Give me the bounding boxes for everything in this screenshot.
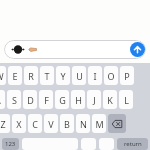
button[interactable]	[4, 40, 146, 59]
button[interactable]: O	[104, 66, 118, 85]
staticText: F	[44, 94, 49, 106]
staticText: U	[76, 70, 83, 82]
button[interactable]: Z	[0, 114, 10, 133]
button[interactable]: B	[60, 114, 74, 133]
staticText: N	[80, 118, 87, 130]
staticText: D	[27, 94, 34, 106]
staticText: K	[107, 94, 113, 106]
button[interactable]: F	[39, 90, 53, 109]
button[interactable]: M	[92, 114, 106, 133]
button[interactable]: S	[7, 90, 21, 109]
staticText: W	[0, 70, 4, 82]
staticText: G	[59, 94, 66, 106]
staticText: C	[32, 118, 38, 130]
button[interactable]: A	[0, 90, 5, 109]
button[interactable]: L	[119, 90, 133, 109]
staticText: R	[28, 70, 34, 82]
button[interactable]: Emoji	[81, 138, 96, 150]
button[interactable]: Y	[56, 66, 70, 85]
staticText: Z	[0, 118, 6, 130]
button[interactable]: I	[88, 66, 102, 85]
button[interactable]: U	[72, 66, 86, 85]
button[interactable]: Space	[22, 138, 78, 150]
button[interactable]: H	[71, 90, 85, 109]
staticText: V	[48, 118, 54, 130]
button[interactable]: Send	[130, 42, 145, 57]
button[interactable]: Backspace	[108, 114, 126, 133]
button[interactable]: V	[44, 114, 58, 133]
staticText: I	[93, 70, 97, 82]
button[interactable]: T	[40, 66, 54, 85]
button[interactable]: D	[23, 90, 37, 109]
staticText: B	[64, 118, 70, 130]
staticText: S	[12, 94, 17, 106]
staticText: A	[0, 94, 1, 106]
button[interactable]: C	[28, 114, 42, 133]
button[interactable]: J	[87, 90, 101, 109]
staticText: H	[75, 94, 82, 106]
button[interactable]: R	[24, 66, 38, 85]
button[interactable]: K	[103, 90, 117, 109]
staticText: J	[93, 94, 96, 106]
staticText: L	[124, 94, 129, 106]
staticText: E	[12, 70, 18, 82]
button[interactable]: E	[8, 66, 22, 85]
button[interactable]: W	[0, 66, 6, 85]
staticText: M	[95, 118, 104, 130]
button[interactable]: P	[120, 66, 134, 85]
staticText: 123	[5, 140, 16, 148]
staticText: X	[16, 118, 22, 130]
staticText: T	[44, 70, 50, 82]
staticText: Y	[60, 70, 66, 82]
button[interactable]: N	[76, 114, 90, 133]
staticText: return	[124, 140, 142, 148]
button[interactable]: X	[12, 114, 26, 133]
staticText: O	[107, 70, 115, 82]
button[interactable]: G	[55, 90, 69, 109]
button[interactable]: return	[117, 138, 148, 150]
button[interactable]: 123	[2, 138, 19, 150]
staticText: P	[124, 70, 130, 82]
button[interactable]: Microphone	[99, 138, 114, 150]
